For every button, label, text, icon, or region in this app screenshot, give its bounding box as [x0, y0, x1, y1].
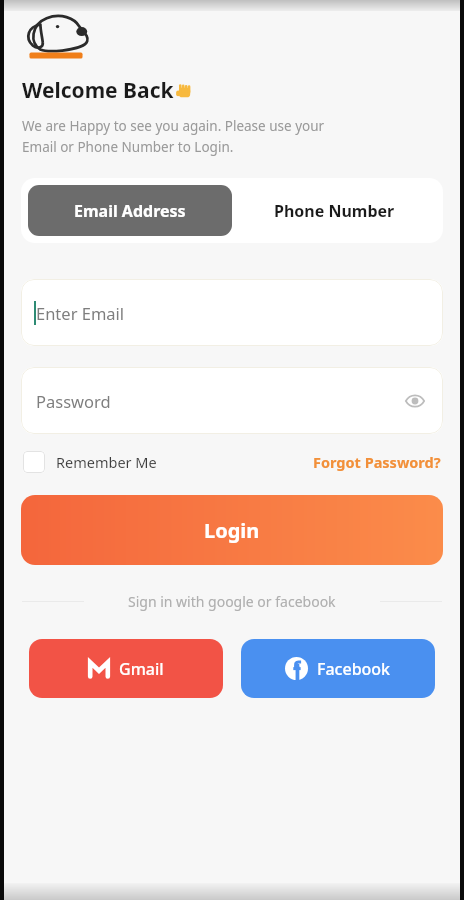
button[interactable]: Login: [21, 495, 443, 565]
staticText: Email Address: [74, 200, 186, 222]
staticText: Password: [36, 390, 402, 412]
button[interactable]: Phone Number: [232, 185, 436, 236]
button[interactable]: Remember Me: [23, 451, 157, 473]
button[interactable]: Facebook: [241, 639, 435, 698]
staticText: Phone Number: [274, 200, 395, 222]
staticText: Gmail: [119, 658, 164, 680]
staticText: Sign in with google or facebook: [128, 592, 336, 611]
button[interactable]: Gmail: [29, 639, 223, 698]
staticText: Facebook: [317, 658, 391, 680]
button[interactable]: Enter Email: [21, 279, 443, 346]
staticText: Login: [204, 517, 260, 544]
staticText: Welcome Back: [22, 76, 174, 105]
staticText: Forgot Password?: [313, 452, 441, 472]
button[interactable]: Password: [21, 367, 443, 434]
staticText: Remember Me: [56, 452, 157, 472]
staticText: We are Happy to see you again. Please us…: [22, 117, 325, 156]
button[interactable]: Email Address: [28, 185, 232, 236]
staticText: Enter Email: [36, 302, 125, 324]
button[interactable]: Forgot Password?: [313, 452, 441, 472]
button[interactable]: Show password: [402, 388, 428, 414]
